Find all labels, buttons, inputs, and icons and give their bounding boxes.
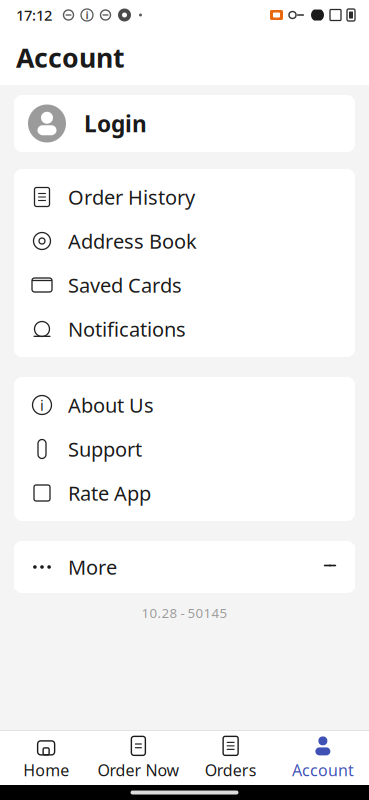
staticText: Orders — [205, 759, 257, 781]
button[interactable]: Order History — [14, 175, 355, 219]
button[interactable]: Home — [0, 731, 92, 785]
button[interactable]: Saved Cards — [14, 263, 355, 307]
staticText: i — [85, 8, 88, 22]
staticText: 17:12 — [16, 5, 52, 25]
button[interactable]: Login — [14, 95, 355, 152]
button[interactable]: Order Now — [92, 731, 184, 785]
button[interactable]: Notifications — [14, 307, 355, 351]
staticText: Account — [16, 40, 125, 75]
button[interactable]: More — [14, 545, 355, 589]
staticText: Order History — [68, 184, 195, 210]
button[interactable]: Rate App — [14, 471, 355, 515]
staticText: i — [40, 395, 44, 415]
staticText: Home — [23, 759, 69, 781]
button[interactable]: Support — [14, 427, 355, 471]
button[interactable]: i — [14, 383, 355, 427]
button[interactable]: Account — [277, 731, 369, 785]
staticText: Address Book — [68, 228, 197, 254]
staticText: Notifications — [68, 316, 186, 342]
staticText: 10.28 - 50145 — [141, 604, 227, 622]
button[interactable]: Orders — [184, 731, 277, 785]
button[interactable]: Address Book — [14, 219, 355, 263]
staticText: Rate App — [68, 480, 151, 506]
staticText: Support — [68, 436, 142, 462]
staticText: Saved Cards — [68, 272, 182, 298]
staticText: About Us — [68, 392, 154, 418]
staticText: Login — [84, 108, 147, 138]
staticText: More — [68, 554, 117, 580]
staticText: Order Now — [97, 759, 179, 781]
staticText: Account — [292, 759, 354, 781]
